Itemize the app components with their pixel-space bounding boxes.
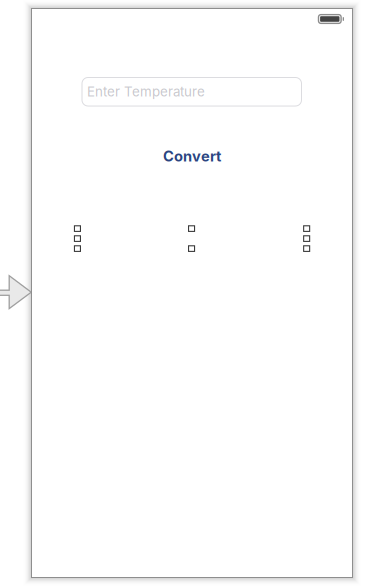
staticText: Enter Temperature — [87, 84, 205, 100]
button[interactable]: Enter Temperature — [82, 77, 301, 106]
button[interactable]: Convert — [163, 147, 221, 165]
staticText: Convert — [163, 147, 221, 165]
